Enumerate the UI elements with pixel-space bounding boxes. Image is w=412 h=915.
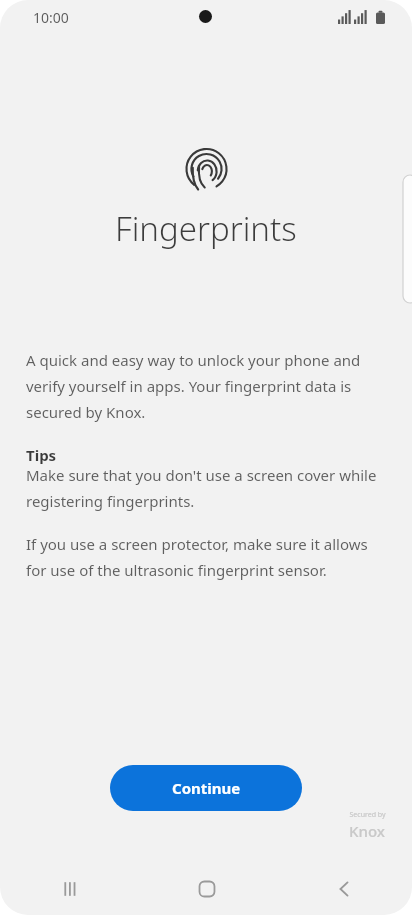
button[interactable]: Continue <box>110 765 302 811</box>
button[interactable]: Back <box>275 863 412 915</box>
button[interactable]: Home <box>138 863 275 915</box>
staticText: Fingerprints <box>115 206 297 251</box>
staticText: Tips <box>26 445 57 465</box>
staticText: Knox <box>349 821 385 841</box>
staticText: If you use a screen protector, make sure… <box>26 534 386 581</box>
button[interactable]: Recent apps <box>0 863 138 915</box>
staticText: A quick and easy way to unlock your phon… <box>26 350 386 423</box>
staticText: Secured by <box>349 810 386 820</box>
staticText: Continue <box>172 778 241 798</box>
staticText: Make sure that you don't use a screen co… <box>26 465 386 512</box>
other: Fingerprint <box>184 147 229 192</box>
staticText: 10:00 <box>33 8 69 27</box>
